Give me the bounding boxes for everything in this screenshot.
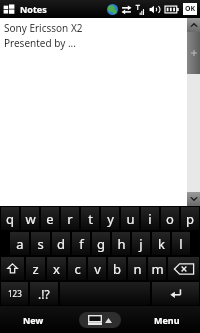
staticText: Presented by ... <box>4 36 76 50</box>
button[interactable]: s <box>31 232 50 255</box>
staticText: b <box>113 260 121 278</box>
staticText: p <box>186 210 194 228</box>
button[interactable]: l <box>172 232 190 255</box>
staticText: f <box>79 235 84 253</box>
button[interactable]: g <box>92 232 110 255</box>
staticText: u <box>126 210 135 228</box>
staticText: .!? <box>38 286 50 302</box>
staticText: OK <box>185 4 196 14</box>
staticText: z <box>32 260 39 278</box>
staticText: Notes <box>20 3 47 15</box>
button[interactable]: j <box>132 232 150 255</box>
button[interactable]: f <box>72 232 90 255</box>
button[interactable]: e <box>41 207 59 230</box>
button[interactable]: o <box>161 207 179 230</box>
button[interactable]: h <box>112 232 130 255</box>
button[interactable]: Backspace <box>168 257 199 280</box>
button[interactable]: t <box>81 207 99 230</box>
button[interactable]: Enter <box>152 282 199 305</box>
staticText: n <box>133 260 142 278</box>
button[interactable]: Scroll up <box>187 18 200 32</box>
staticText: w <box>25 210 36 228</box>
button[interactable]: OK <box>183 3 197 15</box>
button[interactable]: b <box>108 257 126 280</box>
button[interactable]: d <box>52 232 70 255</box>
staticText: e <box>46 210 54 228</box>
button[interactable]: Shift <box>1 257 24 280</box>
button[interactable]: r <box>61 207 79 230</box>
button[interactable]: k <box>152 232 170 255</box>
button[interactable]: a <box>10 232 29 255</box>
staticText: c <box>74 260 81 278</box>
button[interactable]: Scroll down <box>187 192 200 206</box>
button[interactable] <box>187 32 200 74</box>
staticText: h <box>117 235 126 253</box>
staticText: New <box>23 314 44 326</box>
button[interactable]: p <box>181 207 199 230</box>
button[interactable]: i <box>141 207 159 230</box>
staticText: y <box>107 210 114 228</box>
staticText: Menu <box>154 314 180 326</box>
button[interactable]: Menu <box>133 306 200 333</box>
staticText: t <box>88 210 93 228</box>
staticText: i <box>148 210 152 228</box>
button[interactable]: w <box>21 207 39 230</box>
button[interactable]: New <box>0 306 66 333</box>
staticText: m <box>151 260 164 278</box>
button[interactable]: u <box>121 207 139 230</box>
staticText: g <box>97 235 105 253</box>
button[interactable]: c <box>68 257 86 280</box>
staticText: j <box>139 235 143 253</box>
button[interactable]: z <box>26 257 45 280</box>
button[interactable]: Keyboard <box>66 306 133 333</box>
staticText: a <box>16 235 24 253</box>
staticText: 123 <box>8 288 22 299</box>
button[interactable]: y <box>101 207 119 230</box>
staticText: o <box>166 210 174 228</box>
staticText: x <box>53 260 60 278</box>
button[interactable]: Space <box>60 282 150 305</box>
button[interactable]: .!? <box>30 282 58 305</box>
staticText: d <box>57 235 65 253</box>
staticText: r <box>67 210 73 228</box>
button[interactable]: v <box>88 257 106 280</box>
button[interactable]: x <box>47 257 66 280</box>
staticText: k <box>158 235 165 253</box>
staticText: q <box>6 210 14 228</box>
staticText: Sony Ericsson X2 <box>4 21 83 35</box>
staticText: s <box>37 235 44 253</box>
button[interactable]: n <box>128 257 146 280</box>
button[interactable]: 123 <box>1 282 28 305</box>
staticText: v <box>94 260 101 278</box>
staticText: l <box>179 235 183 253</box>
button[interactable]: m <box>148 257 166 280</box>
button[interactable]: q <box>1 207 19 230</box>
